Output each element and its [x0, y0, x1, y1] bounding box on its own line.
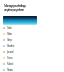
staticText: Mood — [7, 62, 13, 66]
button[interactable]: Relax — [0, 31, 64, 37]
staticText: Notes — [7, 68, 13, 72]
staticText: Focus — [7, 56, 13, 60]
button[interactable]: Track — [0, 25, 64, 31]
button[interactable]: Journal — [0, 49, 64, 55]
button[interactable]: Mood — [0, 61, 64, 67]
button[interactable]: Focus — [0, 55, 64, 61]
staticText: Manage your feelings anytime, anywhere — [4, 4, 26, 12]
staticText: Relax — [7, 32, 12, 36]
staticText: Sleep — [7, 38, 12, 42]
staticText: Track — [7, 26, 12, 30]
button[interactable]: Notes — [0, 67, 64, 72]
button[interactable]: Sleep — [0, 37, 64, 43]
button[interactable]: Breathe — [0, 43, 64, 49]
staticText: Breathe — [7, 44, 14, 48]
staticText: Journal — [7, 50, 13, 54]
